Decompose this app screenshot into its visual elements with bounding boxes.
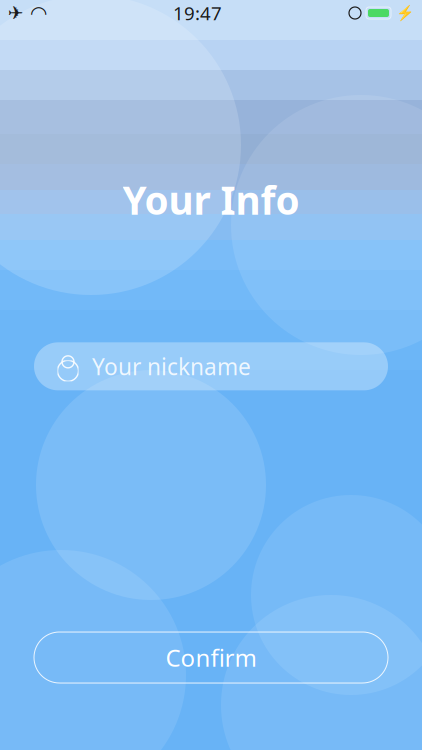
staticText: 19:47 [173,1,222,25]
staticText: Your Info [122,174,299,225]
staticText: Confirm [165,642,256,673]
staticText: ⚡ [396,5,414,21]
button[interactable]: Your nickname [34,342,388,390]
staticText: Your nickname [92,351,251,381]
staticText: ◠ [31,2,46,24]
button[interactable]: Confirm [34,632,388,683]
staticText: ✈ [8,2,24,24]
